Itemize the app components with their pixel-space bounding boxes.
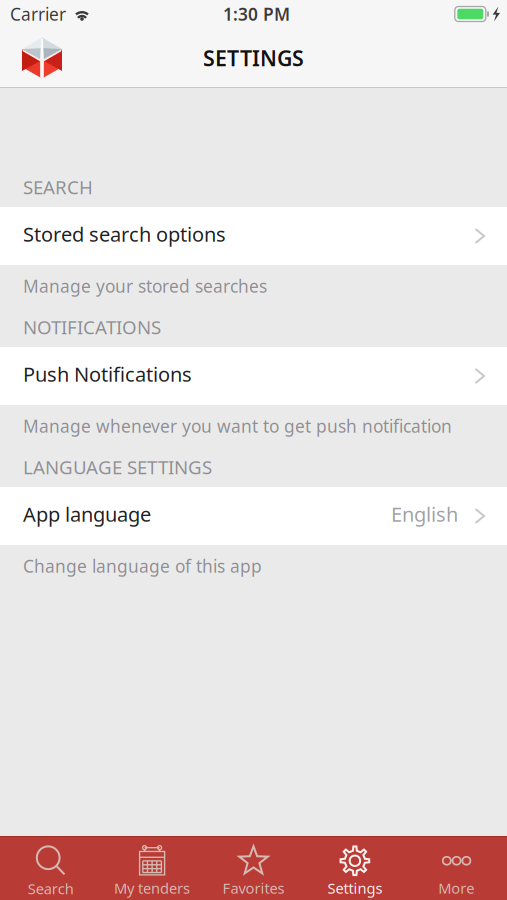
staticText: Stored search options	[23, 221, 226, 247]
staticText: More	[438, 878, 474, 898]
button[interactable]: Favorites	[203, 836, 304, 900]
staticText: SEARCH	[23, 175, 93, 199]
staticText: My tenders	[114, 878, 190, 898]
staticText: Manage your stored searches	[23, 274, 267, 297]
button[interactable]: More	[406, 836, 507, 900]
staticText: Push Notifications	[23, 361, 192, 387]
staticText: App language	[23, 501, 151, 527]
button[interactable]: Search	[0, 836, 101, 900]
staticText: Change language of this app	[23, 554, 262, 577]
button[interactable]: Home	[0, 37, 71, 79]
staticText: Search	[28, 879, 74, 898]
staticText: SETTINGS	[203, 44, 304, 72]
button[interactable]: My tenders	[101, 836, 203, 900]
staticText: NOTIFICATIONS	[23, 315, 161, 339]
staticText: LANGUAGE SETTINGS	[23, 455, 212, 479]
staticText: Favorites	[222, 878, 284, 898]
button[interactable]: Push Notifications	[0, 347, 507, 405]
staticText: 1:30 PM	[223, 2, 290, 25]
button[interactable]: Stored search options	[0, 207, 507, 265]
staticText: English	[391, 501, 458, 527]
staticText: Settings	[327, 878, 382, 898]
staticText: Manage whenever you want to get push not…	[23, 414, 452, 437]
button[interactable]: App language	[0, 487, 507, 545]
button[interactable]: Settings	[304, 836, 406, 900]
staticText: Carrier	[10, 2, 66, 25]
